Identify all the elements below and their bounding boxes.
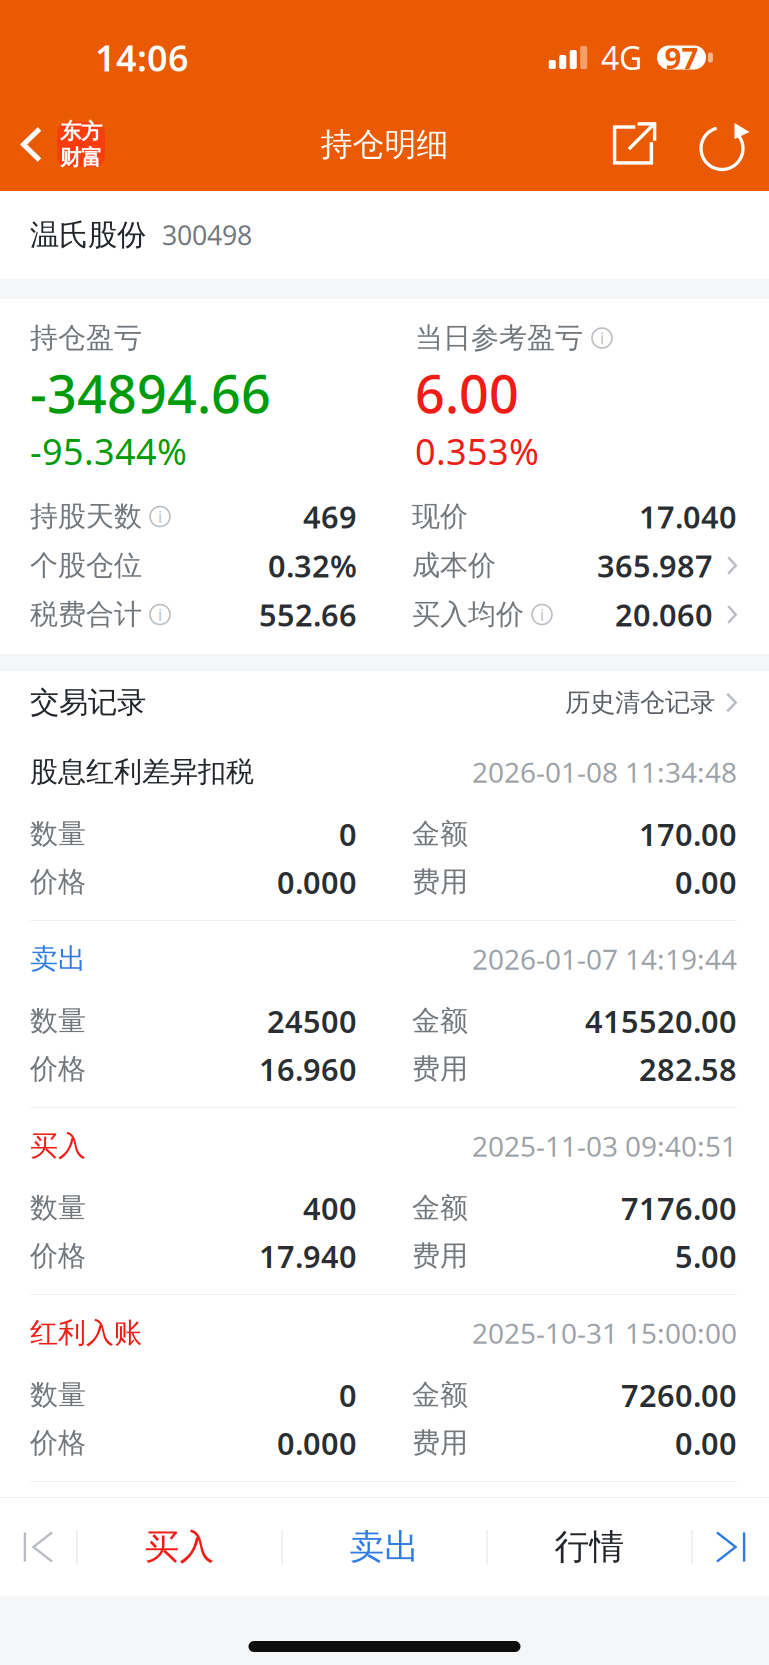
staticText: 415520.00	[585, 1001, 737, 1041]
staticText: 金额	[412, 1191, 468, 1225]
staticText: 价格	[30, 1426, 86, 1460]
staticText: 温氏股份	[30, 217, 146, 253]
staticText: 0.353%	[415, 427, 539, 475]
staticText: 交易记录	[30, 684, 146, 720]
staticText: 税费合计	[30, 597, 142, 632]
button[interactable]: Back	[0, 98, 117, 191]
staticText: 2025-10-31 15:00:00	[472, 1314, 737, 1352]
staticText: 0	[339, 814, 357, 854]
staticText: 持仓明细	[320, 125, 448, 164]
staticText: 2026-01-07 14:19:44	[472, 940, 737, 978]
staticText: 0.32%	[268, 545, 357, 586]
staticText: 成本价	[412, 548, 496, 583]
staticText: i	[158, 506, 162, 527]
staticText: 金额	[412, 1378, 468, 1412]
staticText: 17.040	[639, 496, 737, 537]
staticText: i	[540, 604, 544, 625]
staticText: 365.987	[597, 545, 713, 586]
staticText: 费用	[412, 1239, 468, 1273]
button[interactable]: 买入	[77, 1498, 281, 1596]
staticText: 当日参考盈亏	[415, 321, 583, 355]
staticText: 16.960	[259, 1049, 357, 1089]
staticText: 费用	[412, 1426, 468, 1460]
staticText: 买入	[30, 1129, 86, 1163]
staticText: 170.00	[639, 814, 737, 854]
staticText: 469	[303, 496, 357, 537]
button[interactable]: Refresh	[680, 98, 769, 191]
staticText: 金额	[412, 1004, 468, 1038]
staticText: 2026-01-08 11:34:48	[472, 753, 737, 791]
staticText: 股息红利差异扣税	[30, 755, 254, 789]
staticText: 价格	[30, 865, 86, 899]
staticText: 历史清仓记录	[565, 687, 715, 718]
staticText: 价格	[30, 1052, 86, 1086]
staticText: 卖出	[30, 942, 86, 976]
staticText: 400	[303, 1188, 357, 1228]
staticText: 17.940	[259, 1236, 357, 1276]
staticText: 20.060	[615, 594, 713, 635]
staticText: 0.000	[277, 1423, 357, 1463]
button[interactable]: 卖出	[282, 1498, 486, 1596]
staticText: 数量	[30, 817, 86, 851]
staticText: 97	[664, 38, 698, 77]
staticText: 持仓盈亏	[30, 321, 142, 355]
staticText: i	[600, 327, 604, 349]
staticText: 财富	[60, 144, 102, 171]
staticText: 0.00	[675, 862, 737, 902]
staticText: 7260.00	[621, 1375, 737, 1415]
staticText: 0	[339, 1375, 357, 1415]
button[interactable]: Share	[586, 98, 680, 191]
staticText: 数量	[30, 1004, 86, 1038]
staticText: 6.00	[415, 358, 519, 428]
staticText: 买入均价	[412, 597, 524, 632]
staticText: 282.58	[639, 1049, 737, 1089]
button[interactable]: 历史清仓记录	[565, 687, 737, 718]
staticText: 14:06	[95, 34, 189, 81]
staticText: 费用	[412, 1052, 468, 1086]
staticText: 4G	[601, 36, 642, 79]
staticText: 2025-11-03 09:40:51	[472, 1127, 737, 1165]
staticText: 数量	[30, 1378, 86, 1412]
staticText: 费用	[412, 865, 468, 899]
staticText: 数量	[30, 1191, 86, 1225]
staticText: 7176.00	[621, 1188, 737, 1228]
staticText: 552.66	[259, 594, 357, 635]
staticText: i	[158, 604, 162, 625]
staticText: 红利入账	[30, 1316, 142, 1350]
staticText: 买入	[144, 1526, 214, 1568]
staticText: 300498	[162, 217, 252, 253]
button[interactable]: Last	[692, 1498, 768, 1596]
staticText: 金额	[412, 817, 468, 851]
staticText: 0.00	[675, 1423, 737, 1463]
button[interactable]: First	[0, 1498, 76, 1596]
staticText: 现价	[412, 499, 468, 534]
staticText: 5.00	[675, 1236, 737, 1276]
staticText: 行情	[554, 1526, 624, 1568]
staticText: 东方	[60, 118, 102, 144]
staticText: 0.000	[277, 862, 357, 902]
staticText: 价格	[30, 1239, 86, 1273]
staticText: 个股仓位	[30, 548, 142, 583]
staticText: 持股天数	[30, 499, 142, 534]
staticText: -34894.66	[30, 358, 271, 428]
staticText: 24500	[267, 1001, 357, 1041]
staticText: 卖出	[349, 1526, 419, 1568]
button[interactable]: 行情	[487, 1498, 691, 1596]
staticText: -95.344%	[30, 427, 187, 475]
